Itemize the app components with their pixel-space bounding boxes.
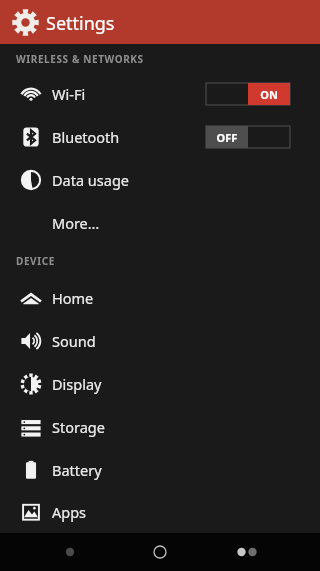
button[interactable]: Sound <box>0 319 320 362</box>
button[interactable]: Toggle on <box>206 83 290 105</box>
staticText: DEVICE <box>16 254 55 268</box>
staticText: Display <box>52 374 102 394</box>
staticText: Data usage <box>52 170 129 190</box>
button[interactable]: Back <box>50 533 90 571</box>
staticText: Home <box>52 288 94 308</box>
button[interactable]: Recent apps <box>224 533 270 571</box>
staticText: Battery <box>52 460 102 480</box>
button[interactable]: Battery <box>0 448 320 491</box>
staticText: WIRELESS & NETWORKS <box>16 52 144 66</box>
button[interactable]: Bluetooth <box>0 115 320 158</box>
staticText: Bluetooth <box>52 127 120 147</box>
staticText: Apps <box>52 502 87 522</box>
staticText: Wi-Fi <box>52 84 86 104</box>
button[interactable]: Data usage <box>0 158 320 201</box>
button[interactable]: Apps <box>0 491 320 533</box>
staticText: More… <box>52 213 100 233</box>
button[interactable]: Wi-Fi <box>0 72 320 115</box>
staticText: ON <box>248 87 290 102</box>
staticText: Settings <box>46 11 115 36</box>
staticText: OFF <box>206 130 248 145</box>
button[interactable]: Home <box>140 533 180 571</box>
button[interactable]: Display <box>0 362 320 405</box>
button[interactable]: Storage <box>0 405 320 448</box>
button[interactable]: Toggle off <box>206 126 290 148</box>
button[interactable]: More… <box>0 201 320 244</box>
staticText: Storage <box>52 417 105 437</box>
button[interactable]: Home <box>0 276 320 319</box>
staticText: Sound <box>52 331 96 351</box>
